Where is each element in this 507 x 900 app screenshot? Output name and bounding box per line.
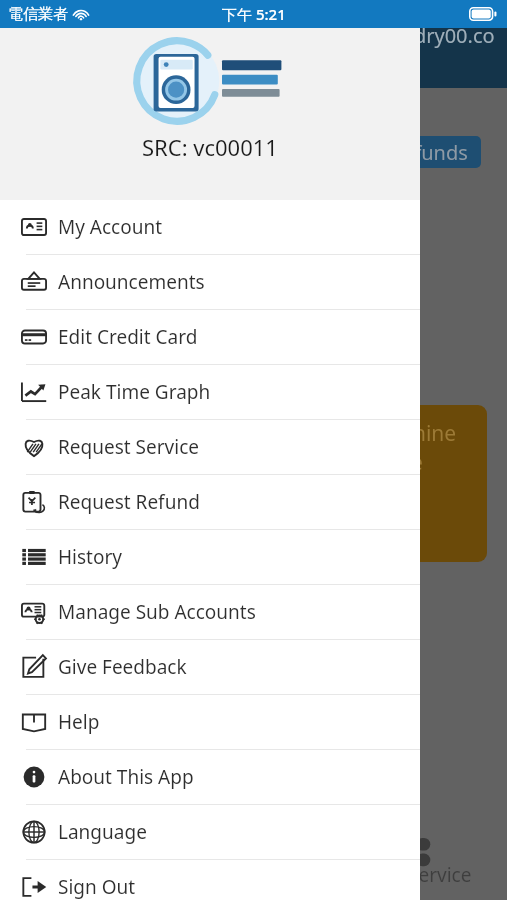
staticText: Request Refunds: [309, 139, 468, 166]
button[interactable]: Manage Sub Accounts: [0, 585, 420, 639]
button[interactable]: Help: [0, 695, 420, 749]
staticText: Manage Sub Accounts: [58, 599, 256, 625]
staticText: Service: [408, 862, 472, 888]
staticText: Machine Code: [372, 419, 487, 477]
button[interactable]: Give Feedback: [0, 640, 420, 694]
button[interactable]: Sign Out: [0, 860, 420, 900]
staticText: 下午 5:21: [222, 4, 286, 24]
staticText: Request Service: [58, 434, 199, 460]
staticText: Help: [58, 709, 100, 735]
staticText: Sign Out: [58, 874, 136, 900]
staticText: History: [58, 544, 122, 570]
staticText: Language: [58, 819, 147, 845]
button[interactable]: History: [0, 530, 420, 584]
button[interactable]: Request Service: [0, 420, 420, 474]
button[interactable]: Service: [396, 824, 507, 900]
staticText: Announcements: [58, 269, 205, 295]
button[interactable]: My Account: [0, 200, 420, 254]
staticText: Edit Credit Card: [58, 324, 198, 350]
staticText: About This App: [58, 764, 194, 790]
button[interactable]: Request Refunds: [296, 136, 481, 168]
button[interactable]: About This App: [0, 750, 420, 804]
button[interactable]: Request Refund: [0, 475, 420, 529]
button[interactable]: Language: [0, 805, 420, 859]
button[interactable]: Announcements: [0, 255, 420, 309]
staticText: Give Feedback: [58, 654, 187, 680]
staticText: 電信業者: [8, 5, 68, 24]
button[interactable]: Machine Code: [250, 405, 487, 562]
staticText: My Account: [58, 214, 163, 240]
button[interactable]: Peak Time Graph: [0, 365, 420, 419]
button[interactable]: Edit Credit Card: [0, 310, 420, 364]
staticText: Request Refund: [58, 489, 200, 515]
staticText: Peak Time Graph: [58, 379, 211, 405]
staticText: nationallaundry00.com: [296, 22, 507, 76]
staticText: SRC: vc00011: [142, 132, 278, 162]
